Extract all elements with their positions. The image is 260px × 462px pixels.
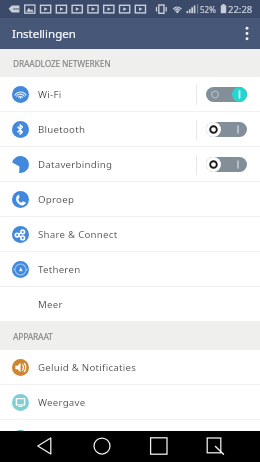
button[interactable]: Home	[73, 431, 130, 462]
staticText: 22:28	[228, 3, 253, 16]
button[interactable]: Share & Connect	[0, 217, 260, 252]
button[interactable]: Geluid & Notificaties	[0, 350, 260, 385]
button[interactable]: Back	[16, 431, 73, 462]
button[interactable]: Bluetooth	[0, 112, 260, 147]
staticText: Oproep	[38, 193, 75, 206]
button[interactable]: Dual window	[187, 431, 244, 462]
button[interactable]: Weergave	[0, 385, 260, 420]
staticText: Meer	[38, 298, 63, 311]
button[interactable]: Turn on	[206, 122, 247, 137]
staticText: Wi-Fi	[38, 88, 62, 101]
button[interactable]: Dataverbinding	[0, 147, 260, 182]
button[interactable]: Wi-Fi	[0, 77, 260, 112]
staticText: 52%	[200, 4, 216, 15]
button[interactable]: Oproep	[0, 182, 260, 217]
staticText: Tetheren	[38, 263, 81, 276]
staticText: Geluid & Notificaties	[38, 361, 137, 374]
staticText: DRAADLOZE NETWERKEN	[13, 58, 111, 69]
staticText: Instellingen	[12, 26, 76, 42]
button[interactable]: Turn off	[206, 87, 247, 102]
button[interactable]: Tetheren	[0, 252, 260, 287]
staticText: APPARAAT	[13, 331, 53, 342]
button[interactable]: Meer	[0, 287, 260, 322]
button[interactable]	[0, 420, 260, 431]
staticText: Share & Connect	[38, 228, 118, 241]
staticText: Dataverbinding	[38, 158, 113, 171]
staticText: Bluetooth	[38, 123, 86, 136]
button[interactable]: Turn on	[206, 157, 247, 172]
staticText: Weergave	[38, 396, 86, 409]
button[interactable]: Recent apps	[130, 431, 187, 462]
button[interactable]: More options	[232, 18, 260, 49]
